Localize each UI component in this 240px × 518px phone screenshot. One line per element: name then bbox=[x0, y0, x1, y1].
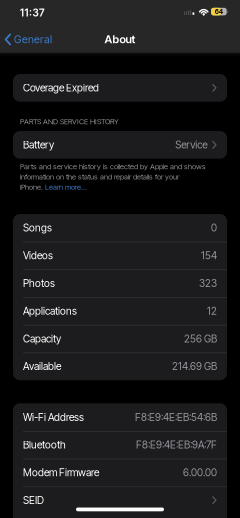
staticText: Applications bbox=[23, 305, 77, 317]
staticText: 214.69 GB bbox=[172, 360, 217, 373]
staticText: Parts and service history is collected b… bbox=[20, 162, 206, 171]
staticText: About bbox=[104, 32, 135, 46]
staticText: 0 bbox=[211, 222, 217, 234]
staticText: Wi-Fi Address bbox=[23, 411, 84, 423]
staticText: Bluetooth bbox=[23, 439, 66, 451]
staticText: Photos bbox=[23, 277, 55, 289]
staticText: Learn more... bbox=[45, 182, 87, 191]
staticText: 6.00.00 bbox=[183, 466, 217, 479]
staticText: F8:E9:4E:EB:9A:7F bbox=[136, 439, 217, 451]
staticText: Service bbox=[175, 139, 207, 151]
staticText: Songs bbox=[23, 222, 52, 234]
staticText: Modem Firmware bbox=[23, 466, 99, 479]
staticText: information on the status and repair det… bbox=[20, 172, 179, 181]
staticText: Coverage Expired bbox=[23, 82, 99, 94]
button[interactable]: Coverage Expired bbox=[13, 74, 227, 102]
staticText: Available bbox=[23, 360, 61, 373]
staticText: General bbox=[14, 33, 52, 46]
staticText: 154 bbox=[201, 249, 217, 262]
button[interactable]: SEID bbox=[13, 486, 227, 514]
button[interactable]: Back bbox=[0, 0, 52, 46]
staticText: F8:E9:4E:EB:54:6B bbox=[135, 411, 217, 423]
staticText: 323 bbox=[199, 277, 217, 289]
staticText: Battery bbox=[23, 139, 54, 151]
staticText: SEID bbox=[23, 494, 44, 506]
staticText: iPhone. bbox=[20, 182, 45, 191]
staticText: 256 GB bbox=[184, 332, 217, 345]
button[interactable]: Learn more... bbox=[45, 182, 87, 191]
staticText: 11:37 bbox=[20, 6, 45, 19]
staticText: 12 bbox=[207, 305, 217, 317]
staticText: Videos bbox=[23, 249, 53, 262]
staticText: PARTS AND SERVICE HISTORY bbox=[20, 117, 119, 126]
staticText: 64 bbox=[215, 8, 223, 16]
button[interactable]: Battery bbox=[13, 131, 227, 159]
staticText: Capacity bbox=[23, 332, 61, 345]
